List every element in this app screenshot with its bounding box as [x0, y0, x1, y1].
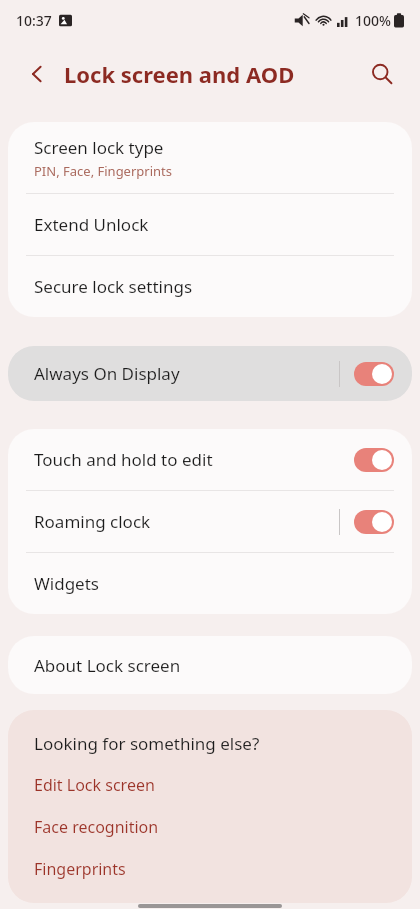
staticText: Secure lock settings — [34, 275, 193, 298]
button[interactable]: Face recognition — [8, 811, 412, 843]
button[interactable]: Secure lock settings — [8, 256, 412, 317]
button[interactable]: Widgets — [8, 553, 412, 614]
button[interactable]: Search — [362, 54, 402, 94]
staticText: Always On Display — [34, 362, 180, 385]
button[interactable]: Toggle — [354, 448, 394, 472]
button[interactable]: Toggle — [354, 510, 394, 534]
staticText: About Lock screen — [34, 654, 181, 677]
staticText: Touch and hold to edit — [34, 448, 213, 471]
button[interactable]: Edit Lock screen — [8, 769, 412, 801]
button[interactable]: Touch and hold to edit — [8, 429, 412, 490]
button[interactable]: Fingerprints — [8, 853, 412, 885]
button[interactable]: About Lock screen — [8, 636, 412, 694]
staticText: Fingerprints — [34, 858, 126, 880]
staticText: Widgets — [34, 572, 99, 595]
button[interactable]: Back — [18, 55, 56, 93]
button[interactable]: Roaming clock — [8, 491, 412, 552]
button[interactable]: Always On Display — [8, 346, 412, 401]
button[interactable]: Toggle — [354, 362, 394, 386]
staticText: 10:37 — [16, 11, 52, 30]
staticText: Screen lock type — [34, 136, 164, 159]
button[interactable]: Screen lock type — [8, 122, 412, 193]
staticText: 100% — [355, 11, 391, 30]
staticText: Lock screen and AOD — [64, 59, 295, 89]
staticText: Roaming clock — [34, 510, 151, 533]
staticText: Extend Unlock — [34, 213, 149, 236]
button[interactable]: Extend Unlock — [8, 194, 412, 255]
staticText: Looking for something else? — [34, 732, 260, 755]
staticText: Face recognition — [34, 816, 159, 838]
staticText: PIN, Face, Fingerprints — [34, 162, 172, 180]
staticText: Edit Lock screen — [34, 774, 155, 796]
